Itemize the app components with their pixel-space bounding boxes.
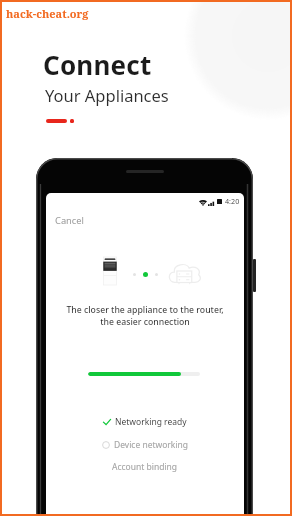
staticText: Cancel xyxy=(55,214,84,227)
staticText: Your Appliances xyxy=(45,84,169,106)
button[interactable]: Networking ready xyxy=(101,415,189,429)
staticText: Account binding xyxy=(112,461,178,473)
staticText: 4:20 xyxy=(225,196,240,206)
button[interactable]: Cancel xyxy=(51,212,88,229)
button[interactable]: Power button xyxy=(253,259,256,292)
staticText: hack-cheat.org xyxy=(6,6,89,21)
staticText: Device networking xyxy=(114,439,189,451)
button[interactable]: Account binding xyxy=(110,460,180,474)
button[interactable]: Device networking xyxy=(100,438,191,452)
staticText: Connect xyxy=(43,47,152,82)
staticText: The closer the appliance to the router, … xyxy=(46,304,244,328)
staticText: Networking ready xyxy=(115,416,187,428)
